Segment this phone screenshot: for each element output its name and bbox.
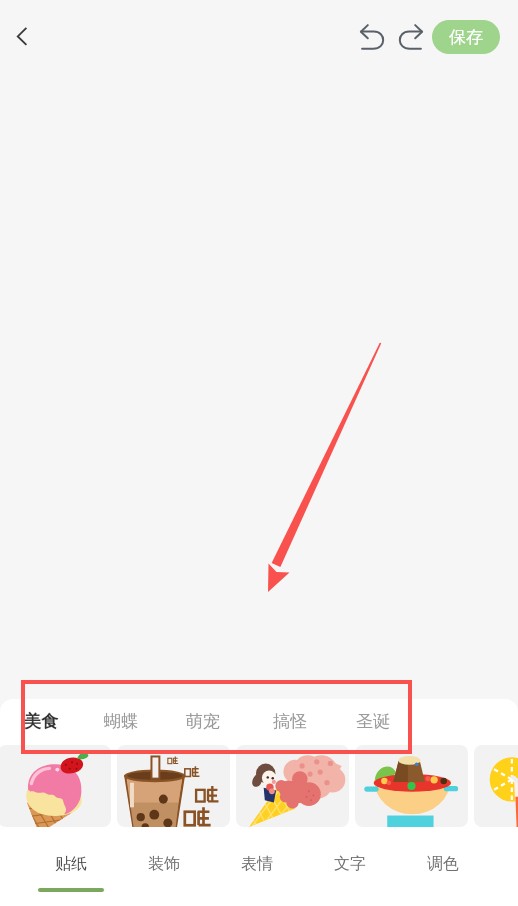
button[interactable]: 搞怪	[271, 705, 309, 738]
staticText: 装饰	[148, 854, 180, 874]
button[interactable]: 表情	[210, 845, 303, 892]
staticText: 调色	[427, 854, 459, 874]
button[interactable]: 装饰	[117, 845, 210, 892]
button[interactable]: Sticker	[474, 745, 518, 827]
staticText: 表情	[241, 854, 273, 874]
button[interactable]: 美食	[22, 705, 60, 738]
staticText: 圣诞	[356, 711, 390, 732]
staticText: 蝴蝶	[104, 711, 138, 732]
button[interactable]: 贴纸	[24, 845, 117, 892]
button[interactable]: Sticker	[117, 745, 230, 827]
button[interactable]: Undo	[357, 23, 387, 53]
button[interactable]: 圣诞	[354, 705, 392, 738]
staticText: 保存	[449, 27, 483, 48]
button[interactable]: 蝴蝶	[102, 705, 140, 738]
button[interactable]: 保存	[432, 20, 500, 54]
button[interactable]: 萌宠	[184, 705, 222, 738]
button[interactable]: 文字	[303, 845, 396, 892]
button[interactable]: 调色	[396, 845, 489, 892]
button[interactable]: Sticker	[0, 745, 111, 827]
staticText: 搞怪	[273, 711, 307, 732]
button[interactable]: Sticker	[355, 745, 468, 827]
staticText: 贴纸	[55, 854, 87, 874]
button[interactable]: Back	[2, 16, 42, 56]
staticText: 萌宠	[186, 711, 220, 732]
button[interactable]: Redo	[396, 23, 426, 53]
staticText: 文字	[334, 854, 366, 874]
staticText: 美食	[24, 711, 58, 732]
button[interactable]: Sticker	[236, 745, 349, 827]
